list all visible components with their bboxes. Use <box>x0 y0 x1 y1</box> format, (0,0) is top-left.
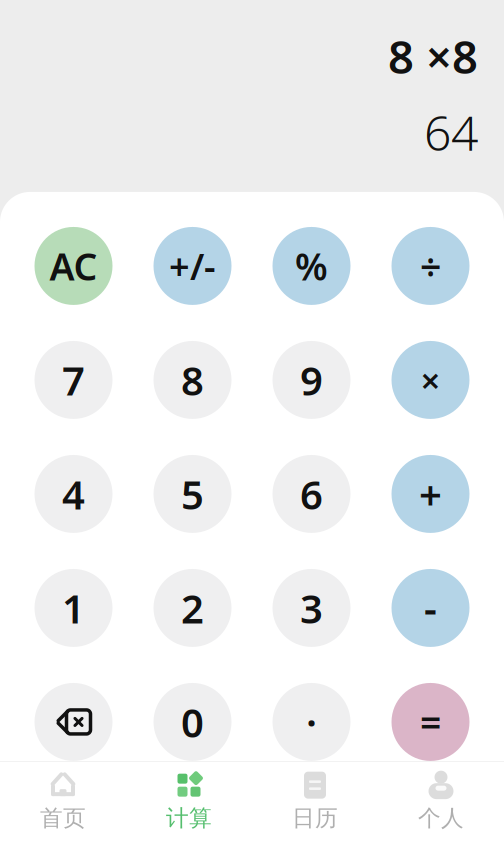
button[interactable]: · <box>272 683 350 761</box>
staticText: 2 <box>181 581 204 634</box>
button[interactable]: 1 <box>34 569 112 647</box>
staticText: % <box>295 241 328 291</box>
staticText: 日历 <box>292 804 338 832</box>
button[interactable]: ÷ <box>391 227 469 305</box>
button[interactable]: 6 <box>272 455 350 533</box>
button[interactable]: = <box>391 683 469 761</box>
button[interactable]: 4 <box>34 455 112 533</box>
staticText: ÷ <box>420 241 441 291</box>
button[interactable]: 计算 <box>126 762 252 842</box>
button[interactable]: % <box>272 227 350 305</box>
staticText: 计算 <box>166 804 212 832</box>
button[interactable]: 9 <box>272 341 350 419</box>
staticText: = <box>420 697 441 747</box>
button[interactable]: +/- <box>153 227 231 305</box>
staticText: 9 <box>300 353 323 406</box>
staticText: 首页 <box>40 804 86 832</box>
button[interactable]: Delete <box>34 683 112 761</box>
button[interactable]: × <box>391 341 469 419</box>
button[interactable]: 5 <box>153 455 231 533</box>
staticText: 5 <box>181 467 204 520</box>
staticText: 个人 <box>418 804 464 832</box>
button[interactable]: - <box>391 569 469 647</box>
staticText: 4 <box>62 467 85 520</box>
button[interactable]: 7 <box>34 341 112 419</box>
staticText: AC <box>49 241 97 291</box>
button[interactable]: AC <box>34 227 112 305</box>
staticText: - <box>424 581 437 634</box>
staticText: 7 <box>62 353 85 406</box>
staticText: +/- <box>169 242 216 290</box>
staticText: 1 <box>62 581 85 634</box>
staticText: × <box>420 357 440 403</box>
staticText: 8 <box>181 353 204 406</box>
staticText: · <box>306 695 317 748</box>
button[interactable]: 首页 <box>0 762 126 842</box>
button[interactable]: 日历 <box>252 762 378 842</box>
staticText: 0 <box>181 695 204 748</box>
button[interactable]: 0 <box>153 683 231 761</box>
button[interactable]: 2 <box>153 569 231 647</box>
staticText: 8 ×8 <box>388 26 478 86</box>
staticText: 64 <box>424 100 478 164</box>
button[interactable]: + <box>391 455 469 533</box>
button[interactable]: 8 <box>153 341 231 419</box>
button[interactable]: 3 <box>272 569 350 647</box>
button[interactable]: 个人 <box>378 762 504 842</box>
staticText: 3 <box>300 581 323 634</box>
staticText: 6 <box>300 467 323 520</box>
staticText: + <box>419 467 442 520</box>
